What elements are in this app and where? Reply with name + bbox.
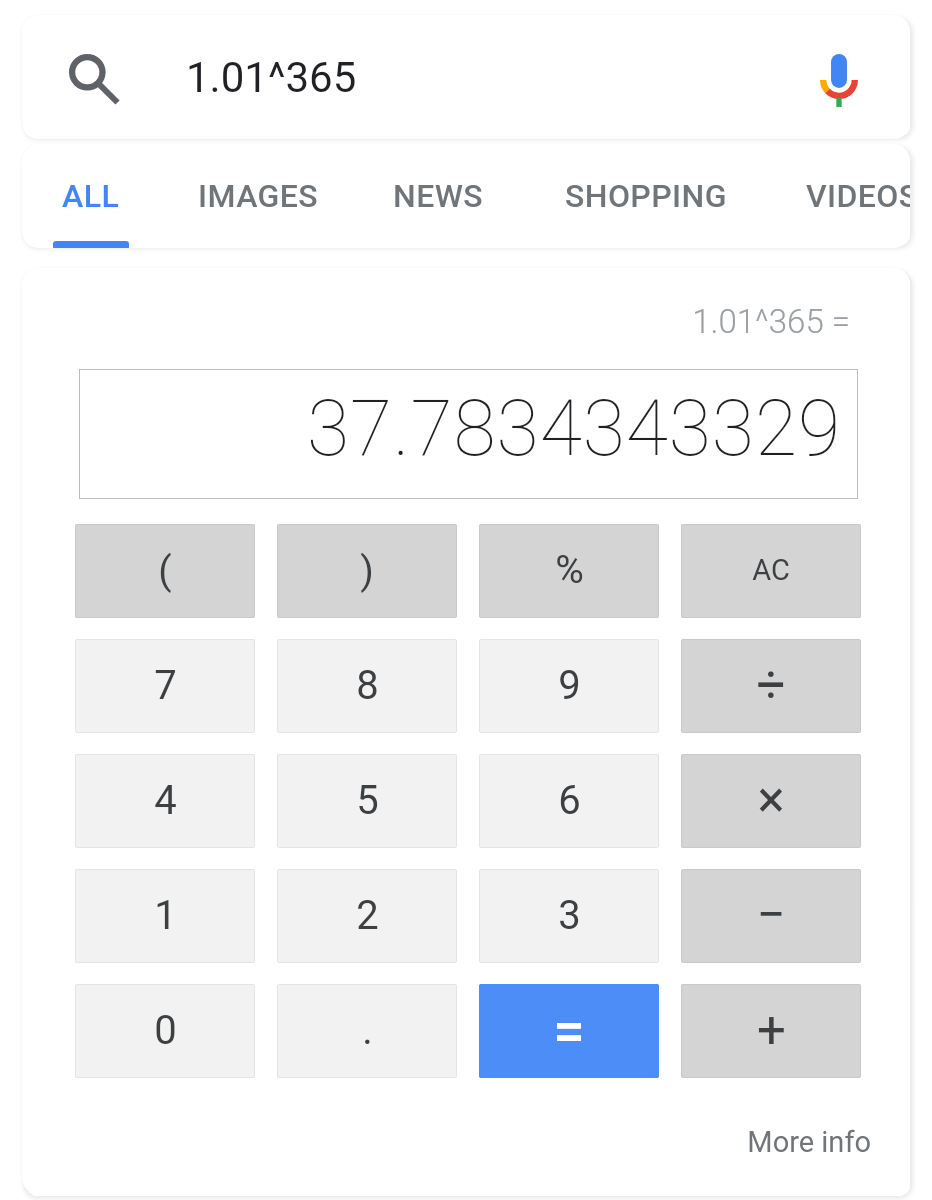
button[interactable]: 1.01^365 — [145, 15, 767, 139]
staticText: ) — [360, 548, 374, 594]
staticText: AC — [752, 553, 790, 587]
button[interactable]: 6 — [479, 754, 659, 848]
staticText: 9 — [558, 662, 581, 709]
button[interactable]: VIDEOS — [782, 144, 910, 248]
button[interactable]: % — [479, 524, 659, 618]
staticText: 37.7834343329 — [307, 384, 841, 474]
staticText: 7 — [154, 662, 177, 709]
staticText: 0 — [154, 1007, 177, 1054]
staticText: More info — [747, 1125, 871, 1159]
button[interactable]: SHOPPING — [551, 144, 741, 248]
button[interactable]: IMAGES — [178, 144, 338, 248]
button[interactable]: − — [681, 869, 861, 963]
staticText: 5 — [356, 777, 379, 824]
button[interactable]: 0 — [75, 984, 255, 1078]
button[interactable]: AC — [681, 524, 861, 618]
staticText: 1.01^365 — [186, 53, 357, 102]
staticText: 1.01^365 = — [22, 302, 850, 341]
button[interactable]: 5 — [277, 754, 457, 848]
button[interactable]: 3 — [479, 869, 659, 963]
staticText: IMAGES — [198, 177, 318, 215]
button[interactable]: More info — [705, 1117, 910, 1167]
staticText: ALL — [62, 177, 120, 215]
button[interactable]: Voice search — [767, 15, 910, 139]
button[interactable]: 7 — [75, 639, 255, 733]
staticText: VIDEOS — [806, 177, 910, 215]
staticText: ÷ — [756, 655, 786, 715]
button[interactable]: ALL — [36, 144, 146, 248]
staticText: 1 — [154, 892, 177, 939]
button[interactable]: 4 — [75, 754, 255, 848]
button[interactable]: NEWS — [363, 144, 513, 248]
staticText: 6 — [558, 777, 581, 824]
staticText: 4 — [154, 777, 177, 824]
staticText: − — [756, 885, 786, 945]
button[interactable]: ( — [75, 524, 255, 618]
staticText: NEWS — [393, 177, 483, 215]
staticText: SHOPPING — [565, 177, 727, 215]
button[interactable]: ) — [277, 524, 457, 618]
staticText: 8 — [356, 662, 379, 709]
staticText: . — [362, 1007, 373, 1054]
staticText: 3 — [558, 892, 581, 939]
button[interactable]: + — [681, 984, 861, 1078]
button[interactable]: × — [681, 754, 861, 848]
staticText: 2 — [356, 892, 379, 939]
button[interactable]: Search — [22, 15, 145, 139]
button[interactable]: 2 — [277, 869, 457, 963]
staticText: % — [555, 547, 584, 593]
button[interactable]: 9 — [479, 639, 659, 733]
button[interactable]: 1 — [75, 869, 255, 963]
button[interactable]: 8 — [277, 639, 457, 733]
button[interactable] — [479, 984, 659, 1078]
button[interactable]: . — [277, 984, 457, 1078]
staticText: ( — [158, 548, 172, 594]
staticText: × — [757, 770, 785, 830]
staticText: + — [757, 1001, 786, 1061]
button[interactable]: ÷ — [681, 639, 861, 733]
